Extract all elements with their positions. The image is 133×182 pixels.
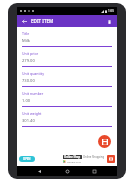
staticText: Online Shop (64, 155, 81, 159)
button[interactable]: OPEN (19, 156, 35, 162)
staticText: Milk (22, 38, 31, 44)
staticText: 279.00 (22, 58, 35, 64)
button[interactable]: Unit quantity (22, 71, 112, 91)
button[interactable]: OPEN (17, 152, 117, 166)
staticText: Unit price (22, 51, 39, 56)
staticText: Google Play (67, 160, 81, 163)
staticText: OPEN (23, 157, 31, 161)
staticText: Unit quantity (22, 71, 45, 76)
button[interactable]: Unit price (22, 51, 112, 71)
button[interactable]: Delete (105, 17, 114, 26)
staticText: EDIT ITEM (31, 18, 54, 24)
button[interactable]: Recent apps (90, 167, 99, 176)
staticText: Online Shopping (83, 155, 105, 159)
button[interactable]: Back (35, 167, 44, 176)
button[interactable]: Unit number (22, 91, 112, 111)
staticText: Unit number (22, 91, 44, 96)
staticText: 1:55 (108, 9, 115, 13)
button[interactable]: Back (20, 17, 29, 26)
staticText: Title (22, 31, 30, 36)
staticText: Unit weight (22, 111, 42, 116)
button[interactable]: Unit weight (22, 111, 112, 131)
button[interactable]: Title (22, 31, 112, 51)
staticText: 1.00 (22, 98, 31, 104)
button[interactable]: Save (98, 135, 111, 148)
button[interactable]: Home (63, 167, 72, 176)
staticText: 730.00 (22, 78, 35, 84)
staticText: 301.40 (22, 118, 35, 124)
